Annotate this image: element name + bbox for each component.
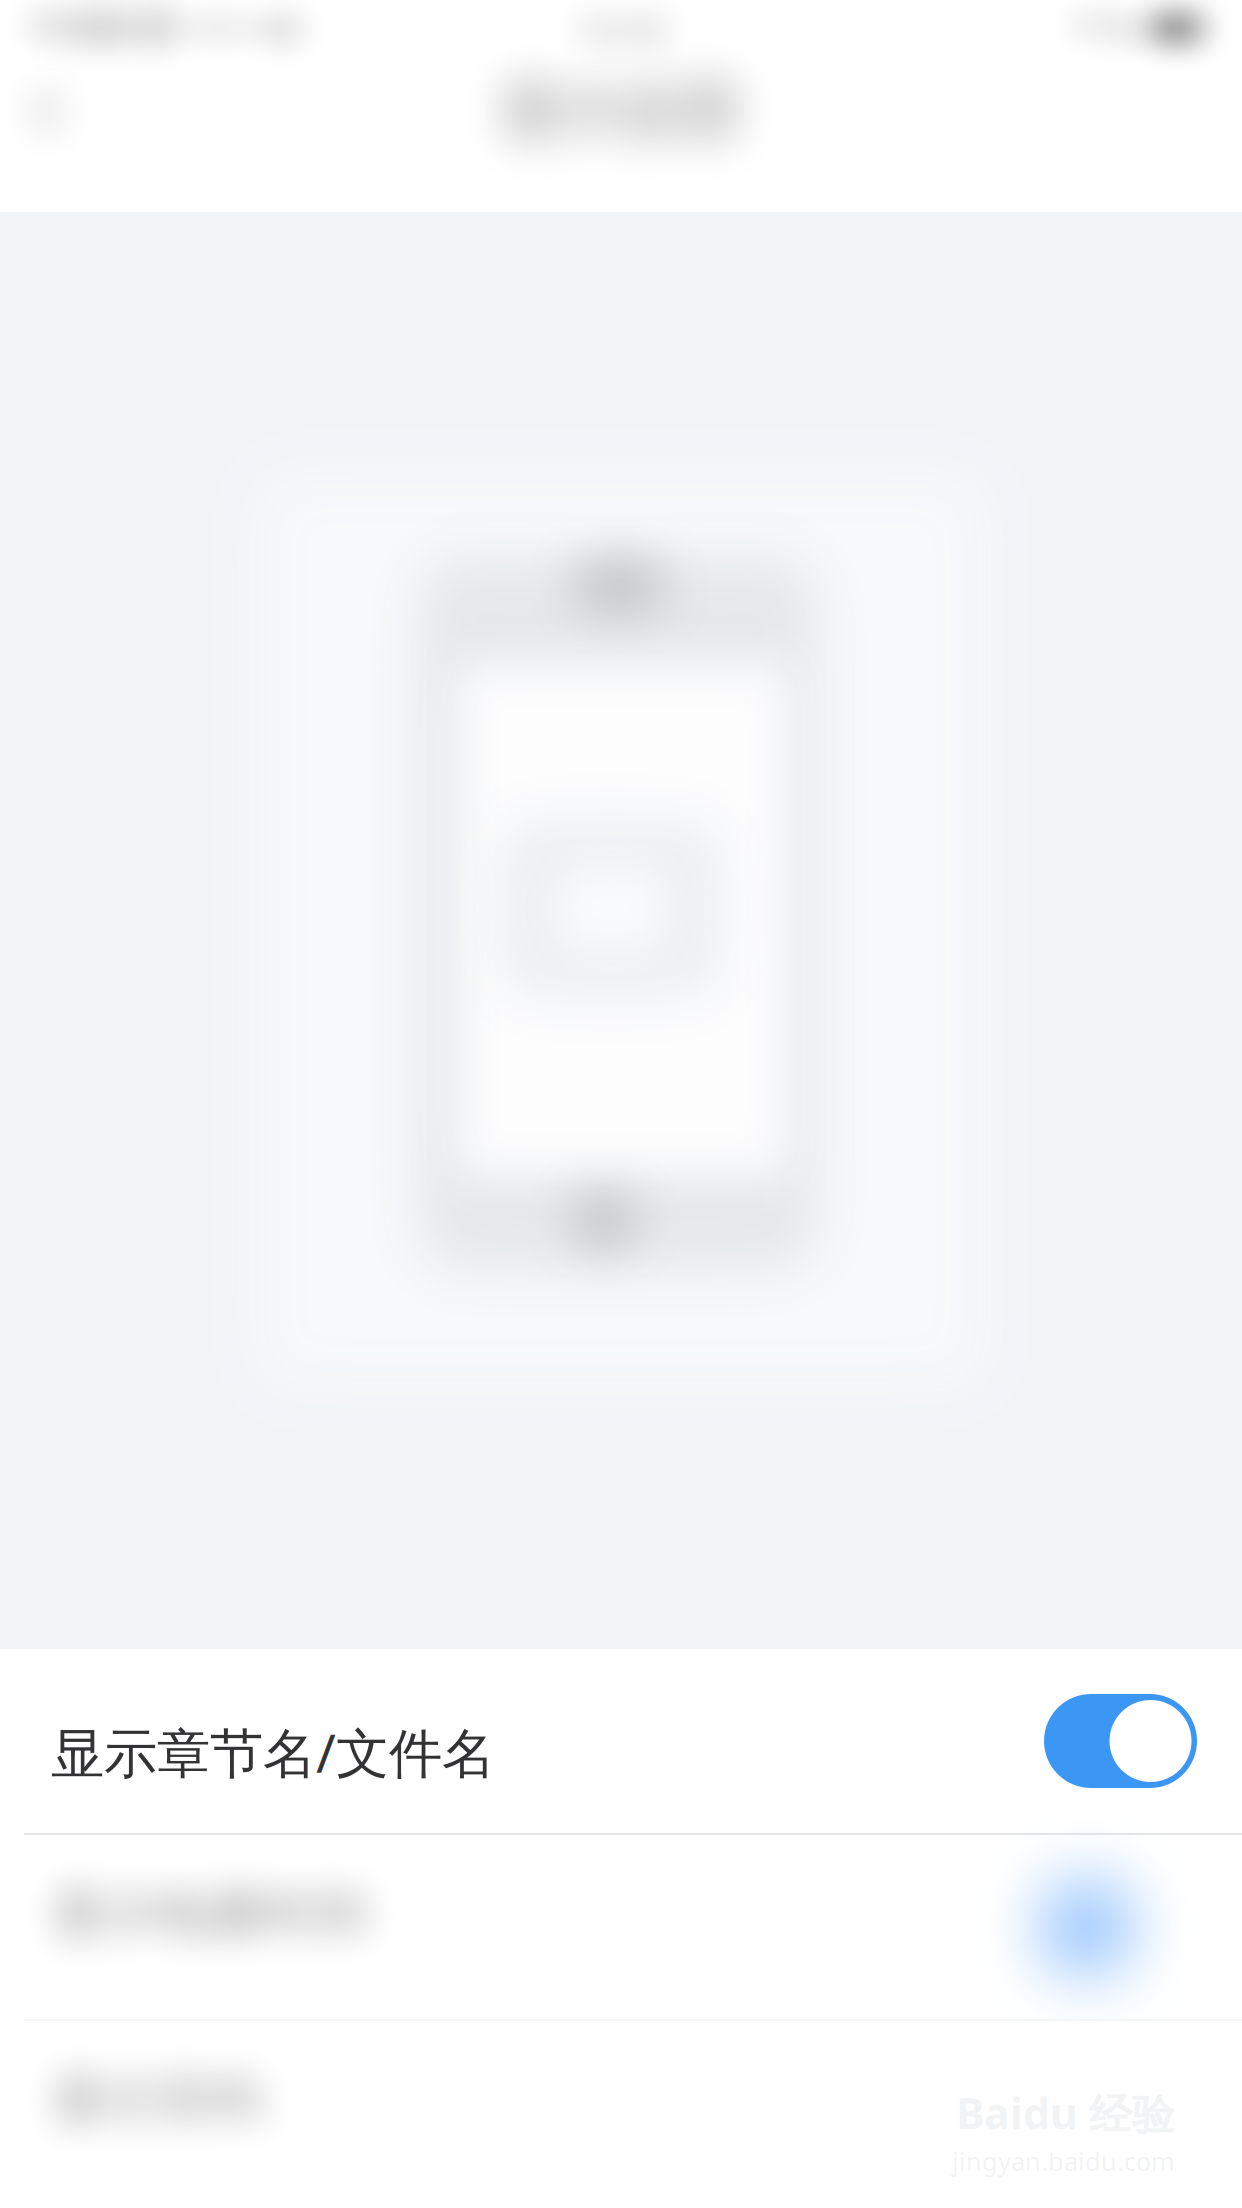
button[interactable]: 显示章节名/文件名	[0, 1649, 1242, 1833]
staticText: 显示章节名/文件名	[51, 1717, 495, 1787]
button[interactable]: 显示页码	[0, 2021, 1242, 2205]
button[interactable]: 显示电量时间	[0, 1835, 1242, 2019]
staticText: jingyan.baidu.com	[952, 2144, 1175, 2178]
staticText: Baidu 经验	[956, 2084, 1175, 2141]
